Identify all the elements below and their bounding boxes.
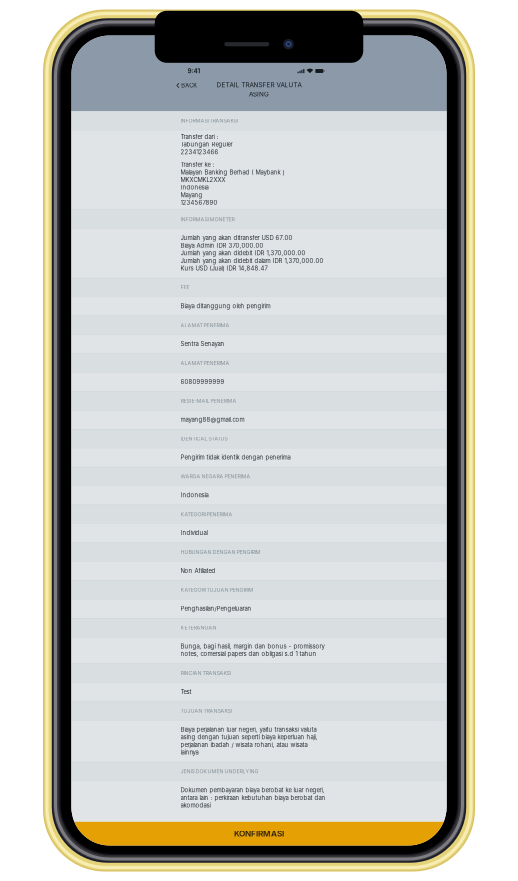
staticText: KETERANGAN	[180, 624, 216, 631]
staticText: Penghasilan/Pengeluaran	[180, 605, 251, 612]
staticText: Dokumen pembayaran biaya berobat ke luar…	[180, 786, 324, 794]
staticText: notes, comersial papers dan obligasi s.d…	[180, 650, 316, 657]
staticText: Bunga, bagi hasil, margin dan bonus - pr…	[180, 643, 324, 650]
staticText: Jumlah yang akan didebit dalam IDR 1,370…	[180, 257, 323, 264]
staticText: Non Afiliated	[180, 567, 215, 574]
staticText: Test	[180, 688, 191, 695]
staticText: KATEGORI TUJUAN PENGIRIM	[180, 587, 253, 593]
staticText: FEE	[180, 284, 189, 291]
staticText: 60809999999	[180, 378, 224, 385]
staticText: WARGA NEGARA PENERIMA	[180, 473, 250, 480]
staticText: 1234567890	[180, 199, 217, 206]
staticText: Individual	[180, 529, 207, 536]
staticText: KONFIRMASI	[234, 829, 284, 838]
staticText: Jumlah yang akan ditransfer USD 67.00	[180, 234, 292, 241]
staticText: ALAMAT PENERIMA	[180, 360, 229, 366]
staticText: antara lain : perkiraan kebutuhan biaya …	[180, 794, 325, 801]
staticText: Kurs USD (Jual) IDR 14,848.47	[180, 265, 267, 272]
staticText: DETAIL TRANSFER VALUTA	[216, 81, 301, 89]
staticText: Biaya ditanggung oleh pengirim	[180, 303, 270, 310]
button[interactable]: BACK	[71, 79, 202, 91]
staticText: Pengirim tidak identik dengan penerima	[180, 454, 290, 461]
staticText: ASING	[249, 90, 269, 98]
staticText: Biaya perjalanan luar negeri, yaitu tran…	[180, 726, 316, 733]
staticText: Indonesia	[180, 184, 208, 191]
staticText: RESI E-MAIL PENERIMA	[180, 398, 236, 404]
staticText: mayang88@gmail.com	[180, 416, 244, 423]
staticText: INFORMASI TRANSAKSI	[180, 117, 237, 124]
staticText: Jumlah yang akan didebit IDR 1,370,000.0…	[180, 249, 305, 257]
staticText: akomodasi	[180, 802, 210, 809]
staticText: JENIS DOKUMEN UNDERLYING	[180, 768, 258, 775]
staticText: 2234123466	[180, 148, 218, 156]
staticText: MKXCMKL2XXX	[180, 176, 225, 183]
staticText: KATEGORI PENERIMA	[180, 511, 232, 517]
staticText: Transfer ke :	[180, 161, 214, 168]
staticText: Malayan Banking Berhad ( Maybank )	[180, 169, 284, 176]
staticText: Tabungan Reguler	[180, 141, 232, 148]
staticText: 9:41	[187, 67, 200, 75]
staticText: Sentra Senayan	[180, 340, 224, 347]
staticText: lainnya	[180, 749, 198, 756]
staticText: HUBUNGAN DENGAN PENGIRIM	[180, 549, 260, 555]
staticText: Indonesia	[180, 491, 208, 499]
button[interactable]: KONFIRMASI	[71, 822, 446, 845]
staticText: TUJUAN TRANSAKSI	[180, 708, 231, 714]
staticText: INFORMASI MONETER	[180, 216, 234, 222]
staticText: Biaya Admin IDR 370,000.00	[180, 242, 263, 249]
staticText: BACK	[181, 82, 197, 89]
staticText: Transfer dari :	[180, 133, 218, 140]
staticText: RINCIAN TRANSAKSI	[180, 670, 230, 676]
staticText: asing dengan tujuan seperti biaya keperl…	[180, 733, 317, 741]
staticText: Mayang	[180, 191, 202, 199]
staticText: IDENTICAL STATUS	[180, 435, 227, 442]
staticText: perjalanan ibadah / wisata rohani, atau …	[180, 741, 307, 748]
staticText: ALAMAT PENERIMA	[180, 322, 229, 328]
